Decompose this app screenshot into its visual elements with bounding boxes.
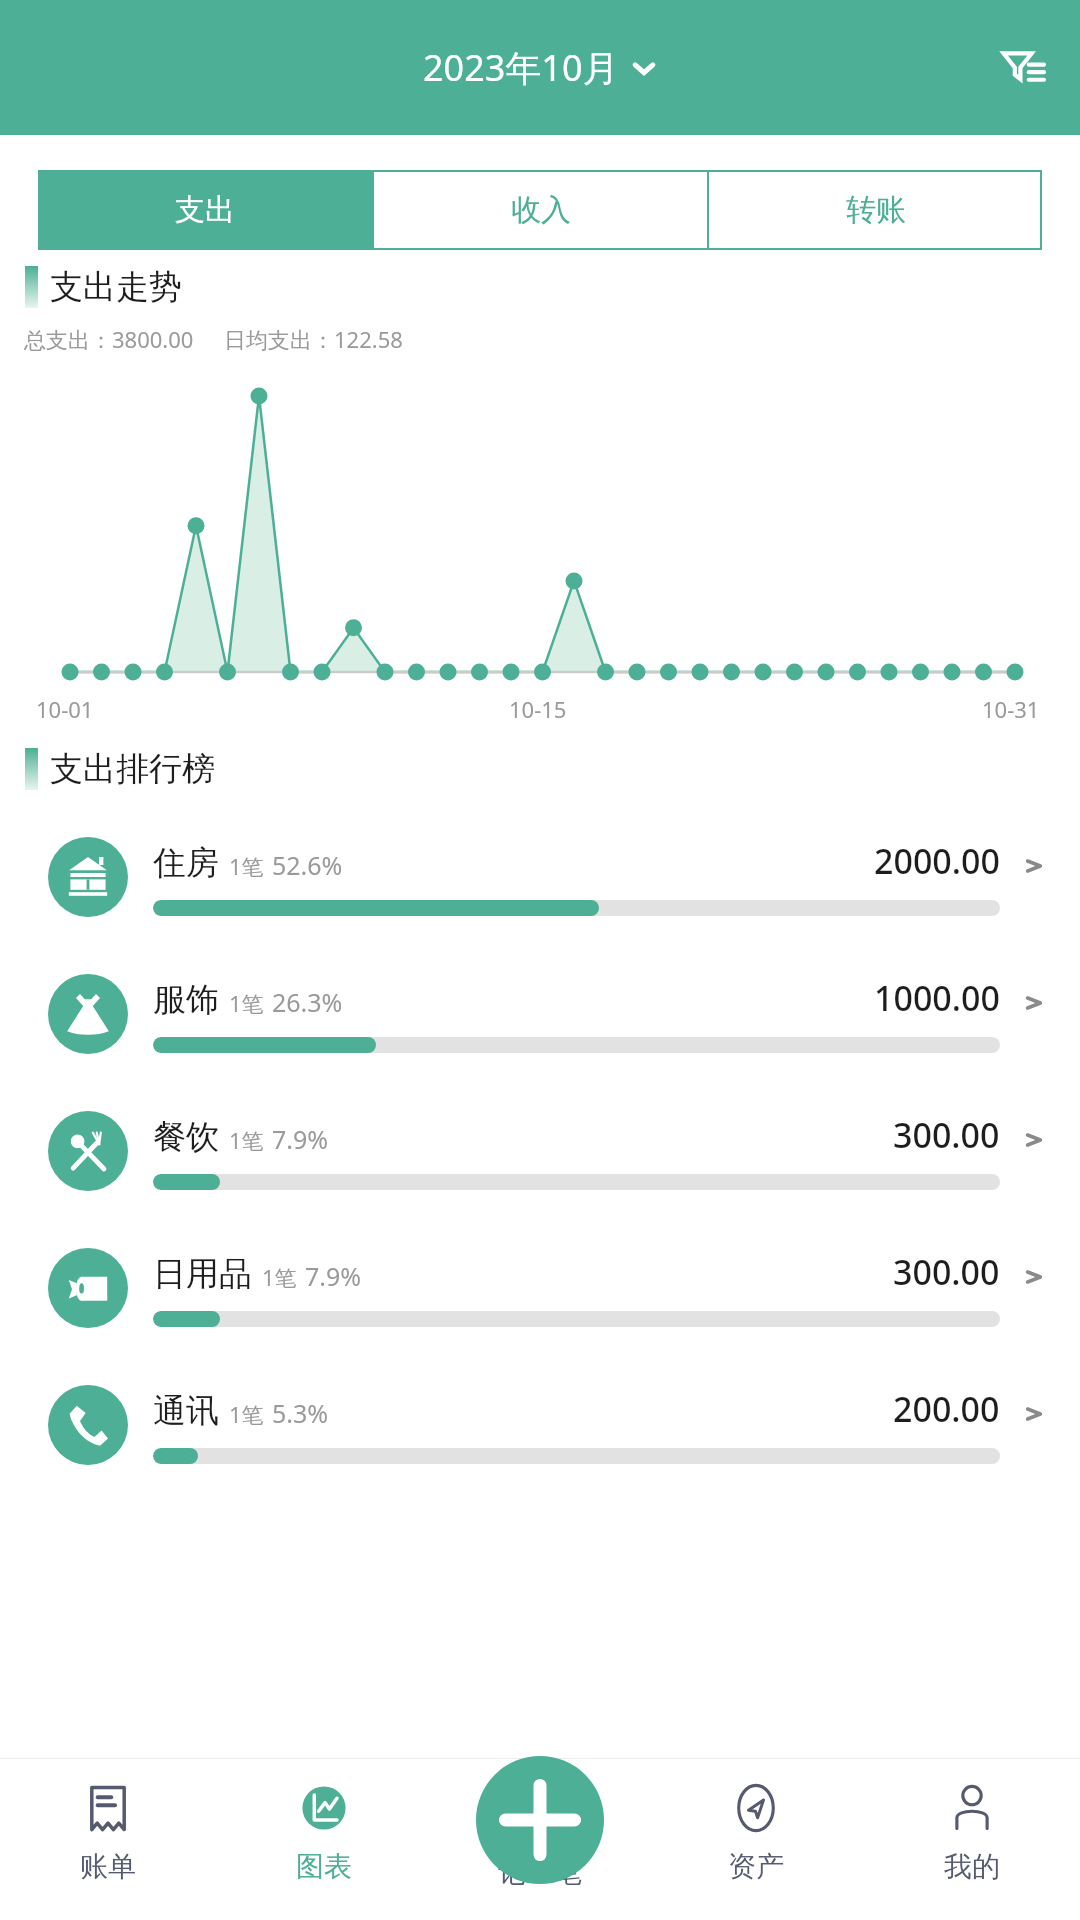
staticText: 26.3% (272, 985, 343, 1019)
staticText: 服饰 (153, 979, 219, 1021)
button[interactable]: 住房 (0, 808, 1080, 945)
button[interactable]: 转账 (709, 170, 1042, 250)
staticText: 图表 (296, 1849, 352, 1884)
staticText: 支出排行榜 (50, 748, 215, 790)
staticText: 记一笔 (498, 1855, 582, 1890)
staticText: 通讯 (153, 1390, 219, 1432)
staticText: 收入 (511, 191, 571, 229)
button[interactable]: 服饰 (0, 945, 1080, 1082)
staticText: 账单 (80, 1849, 136, 1884)
staticText: 1笔 (229, 1125, 264, 1155)
staticText: 支出走势 (50, 266, 182, 308)
staticText: 2000.00 (874, 838, 1000, 884)
button[interactable]: Filter (998, 40, 1054, 96)
staticText: 1笔 (229, 988, 264, 1018)
button[interactable]: 日用品 (0, 1219, 1080, 1356)
staticText: 1笔 (229, 1399, 264, 1429)
staticText: 我的 (944, 1849, 1000, 1884)
staticText: 资产 (728, 1849, 784, 1884)
staticText: 日用品 (153, 1253, 252, 1295)
staticText: 7.9% (305, 1259, 362, 1293)
button[interactable]: 通讯 (0, 1356, 1080, 1493)
staticText: 5.3% (272, 1396, 329, 1430)
button[interactable]: 收入 (374, 170, 707, 250)
staticText: 1笔 (229, 851, 264, 881)
staticText: 200.00 (893, 1386, 1000, 1432)
button[interactable]: Add record (476, 1756, 604, 1884)
button[interactable]: 支出 (38, 170, 372, 250)
staticText: 1000.00 (874, 975, 1000, 1021)
button[interactable]: 我的 (864, 1759, 1080, 1920)
button[interactable]: 资产 (648, 1759, 864, 1920)
staticText: 7.9% (272, 1122, 329, 1156)
button[interactable]: 2023年10月 (423, 43, 657, 92)
staticText: 餐饮 (153, 1116, 219, 1158)
staticText: 总支出：3800.00 (24, 324, 194, 354)
button[interactable]: 图表 (216, 1759, 432, 1920)
staticText: 300.00 (893, 1249, 1000, 1295)
staticText: 日均支出：122.58 (224, 324, 403, 354)
staticText: 2023年10月 (423, 43, 619, 92)
button[interactable]: 餐饮 (0, 1082, 1080, 1219)
staticText: 住房 (153, 842, 219, 884)
staticText: 300.00 (893, 1112, 1000, 1158)
staticText: 转账 (846, 191, 906, 229)
staticText: 1笔 (262, 1262, 297, 1292)
staticText: 10-01 (36, 694, 94, 724)
staticText: 52.6% (272, 848, 343, 882)
button[interactable]: 记一笔 (432, 1759, 648, 1920)
staticText: 10-31 (982, 694, 1040, 724)
staticText: 支出 (175, 191, 235, 229)
staticText: 10-15 (509, 694, 567, 724)
button[interactable]: 账单 (0, 1759, 216, 1920)
